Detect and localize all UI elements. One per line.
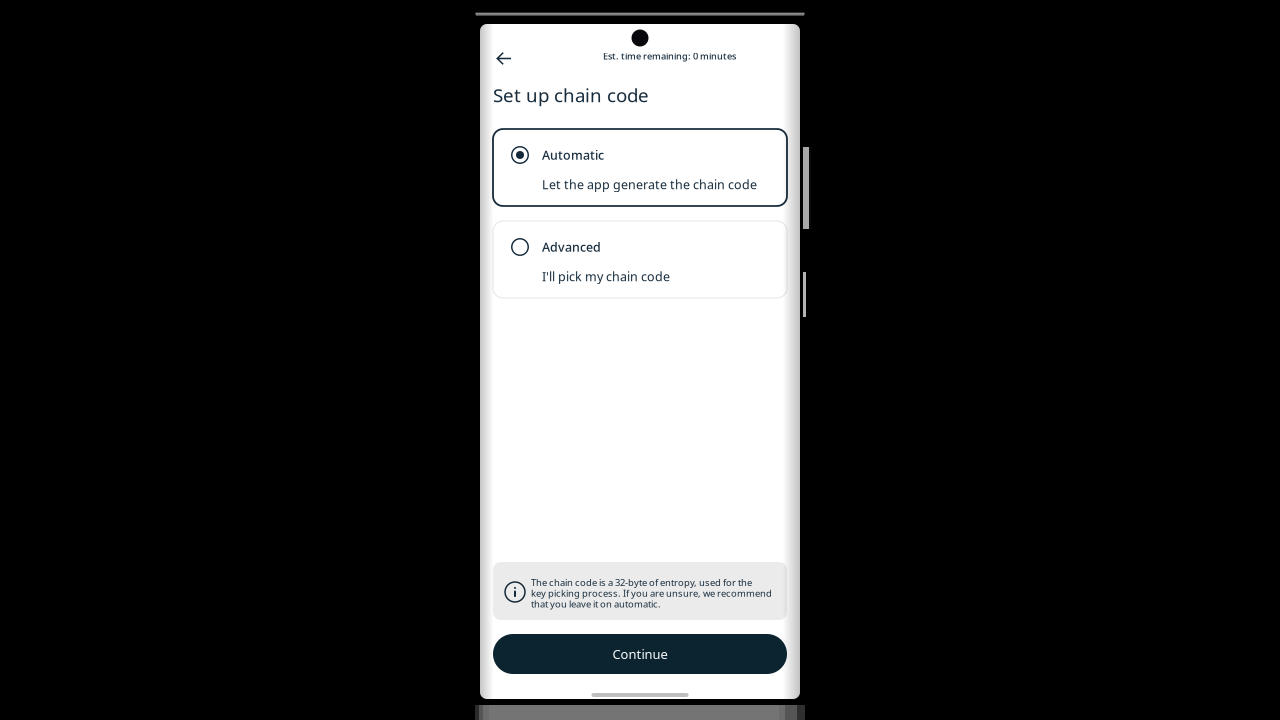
- button[interactable]: Continue: [493, 634, 787, 674]
- button[interactable]: Automatic: [493, 129, 787, 206]
- staticText: Let the app generate the chain code: [542, 176, 757, 193]
- staticText: I'll pick my chain code: [542, 268, 670, 285]
- staticText: The chain code is a 32-byte of entropy, …: [531, 577, 772, 609]
- staticText: Est. time remaining: 0 minutes: [603, 50, 736, 62]
- staticText: Advanced: [542, 239, 601, 255]
- button[interactable]: Back: [480, 48, 520, 68]
- staticText: Automatic: [542, 147, 604, 163]
- staticText: Continue: [612, 645, 667, 663]
- staticText: Set up chain code: [493, 82, 649, 108]
- button[interactable]: Advanced: [493, 221, 787, 298]
